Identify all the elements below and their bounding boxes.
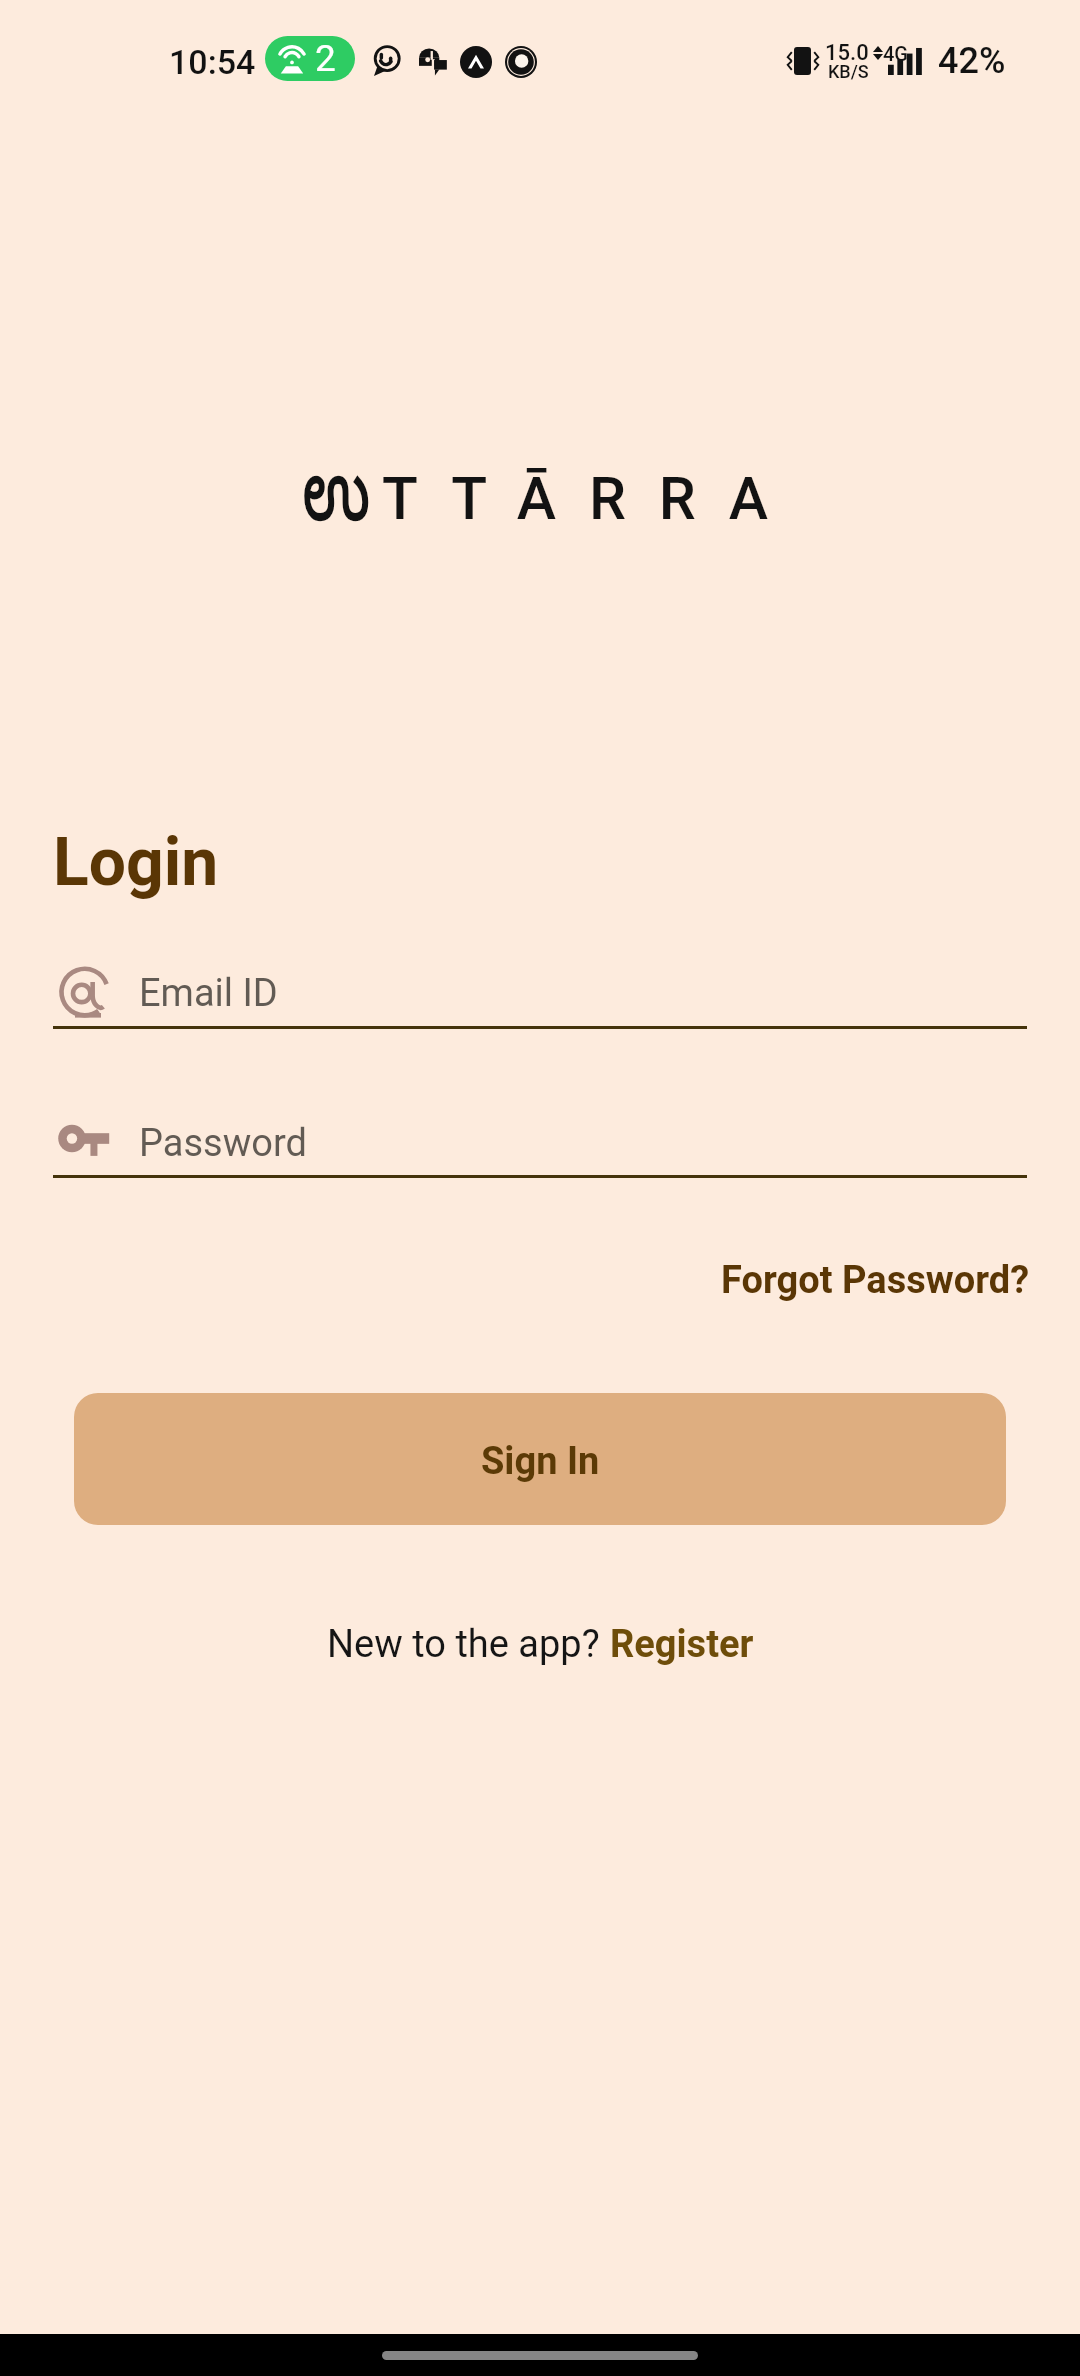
staticText: TTĀRRA [382,464,801,533]
staticText: 2 [315,37,336,80]
button[interactable]: Forgot Password? [721,1258,1030,1303]
staticText: Password [139,1121,307,1166]
button[interactable]: Register [610,1622,754,1667]
staticText: Email ID [139,971,278,1016]
staticText: Sign In [481,1439,600,1484]
button[interactable]: Email ID [53,942,1027,1029]
button[interactable]: Password [53,1096,1027,1178]
staticText: Forgot Password? [721,1258,1030,1303]
staticText: 4G [883,42,908,65]
staticText: Login [53,824,219,901]
staticText: Register [610,1622,754,1667]
staticText: 10:54 [169,42,256,82]
staticText: 15.0 [825,40,869,66]
staticText: ಉ [303,458,370,559]
staticText: 42% [938,40,1006,82]
staticText: New to the app? [327,1622,610,1667]
button[interactable]: Sign In [74,1393,1006,1525]
staticText: KB/S [828,61,869,82]
